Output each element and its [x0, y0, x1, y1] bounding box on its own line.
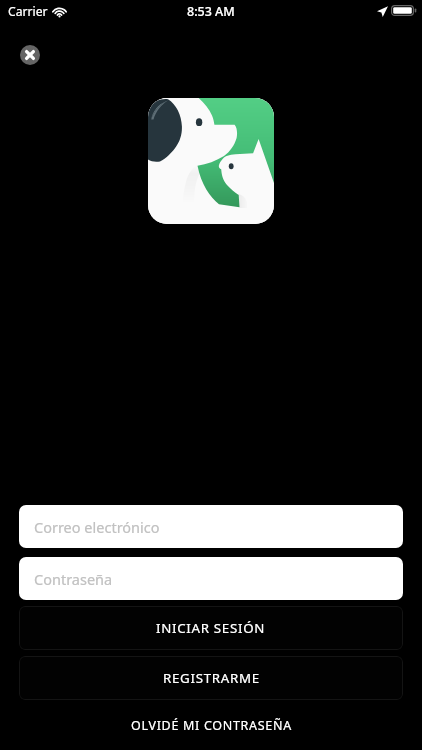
staticText: INICIAR SESIÓN — [156, 619, 266, 637]
staticText: Contraseña — [34, 569, 113, 589]
button[interactable]: OLVIDÉ MI CONTRASEÑA — [0, 700, 422, 750]
button[interactable]: Correo electrónico — [19, 505, 403, 548]
button[interactable]: Close — [20, 45, 40, 65]
staticText: OLVIDÉ MI CONTRASEÑA — [131, 717, 292, 734]
button[interactable]: Contraseña — [19, 557, 403, 600]
staticText: Correo electrónico — [34, 517, 160, 537]
button[interactable]: REGISTRARME — [19, 656, 403, 700]
staticText: Carrier — [8, 3, 48, 20]
button[interactable]: INICIAR SESIÓN — [19, 606, 403, 650]
staticText: REGISTRARME — [163, 669, 260, 687]
staticText: 8:53 AM — [187, 3, 235, 20]
